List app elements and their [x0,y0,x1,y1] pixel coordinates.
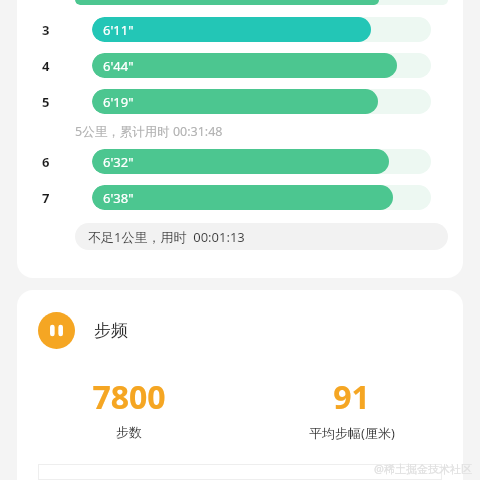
button[interactable]: 6 [17,149,463,174]
staticText: 6'38" [103,189,134,207]
staticText: @稀土掘金技术社区 [374,461,472,476]
staticText: 6'44" [103,57,134,75]
staticText: 5 [42,93,50,111]
staticText: 7800 [92,375,166,419]
button[interactable]: 4 [17,53,463,78]
staticText: 6'32" [103,153,134,171]
staticText: 6 [42,153,50,171]
staticText: 3 [42,21,50,39]
button[interactable]: 3 [17,17,463,42]
button[interactable]: 不足1公里，用时 00:01:13 [75,223,448,250]
staticText: 5公里，累计用时 00:31:48 [75,123,223,140]
staticText: 6'19" [103,93,134,111]
other: Cadence [38,312,75,349]
button[interactable]: 5 [17,89,463,114]
staticText: 平均步幅(厘米) [309,424,395,442]
staticText: 步频 [94,320,128,341]
staticText: 不足1公里，用时 00:01:13 [88,228,245,246]
staticText: 7 [42,189,50,207]
staticText: 4 [42,57,50,75]
staticText: 91 [333,375,370,419]
button[interactable]: 7 [17,185,463,210]
staticText: 步数 [116,424,142,440]
button[interactable]: Cadence [38,312,128,349]
staticText: 6'11" [103,21,134,39]
